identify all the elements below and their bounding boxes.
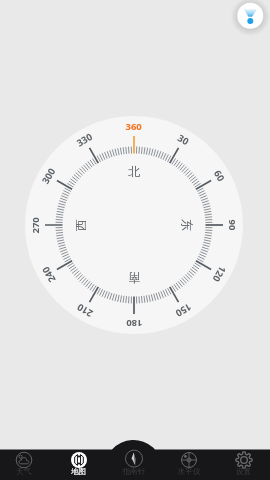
button[interactable]: Flashlight: [233, 0, 267, 33]
button[interactable]: Level: [162, 447, 216, 480]
button[interactable]: Weather: [0, 447, 51, 480]
button[interactable]: Compass: [107, 447, 161, 480]
button[interactable]: Settings: [217, 447, 270, 480]
button: [0, 0, 270, 480]
button[interactable]: Map: [52, 447, 106, 480]
